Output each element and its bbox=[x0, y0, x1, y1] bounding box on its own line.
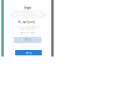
staticText: Code expires soon bbox=[21, 45, 38, 47]
staticText: logo bbox=[24, 6, 31, 10]
staticText: Hi, welcome bbox=[18, 20, 36, 24]
staticText: Security code bbox=[20, 31, 35, 34]
staticText: Verify bbox=[25, 51, 31, 54]
staticText: Lorem ipsum dolor sit amet, consectetur … bbox=[9, 10, 46, 20]
staticText: 084 562 bbox=[24, 38, 31, 41]
button[interactable]: Verify bbox=[15, 50, 42, 55]
staticText: finish signing in bbox=[20, 27, 36, 30]
staticText: Use the code below to bbox=[16, 25, 39, 28]
